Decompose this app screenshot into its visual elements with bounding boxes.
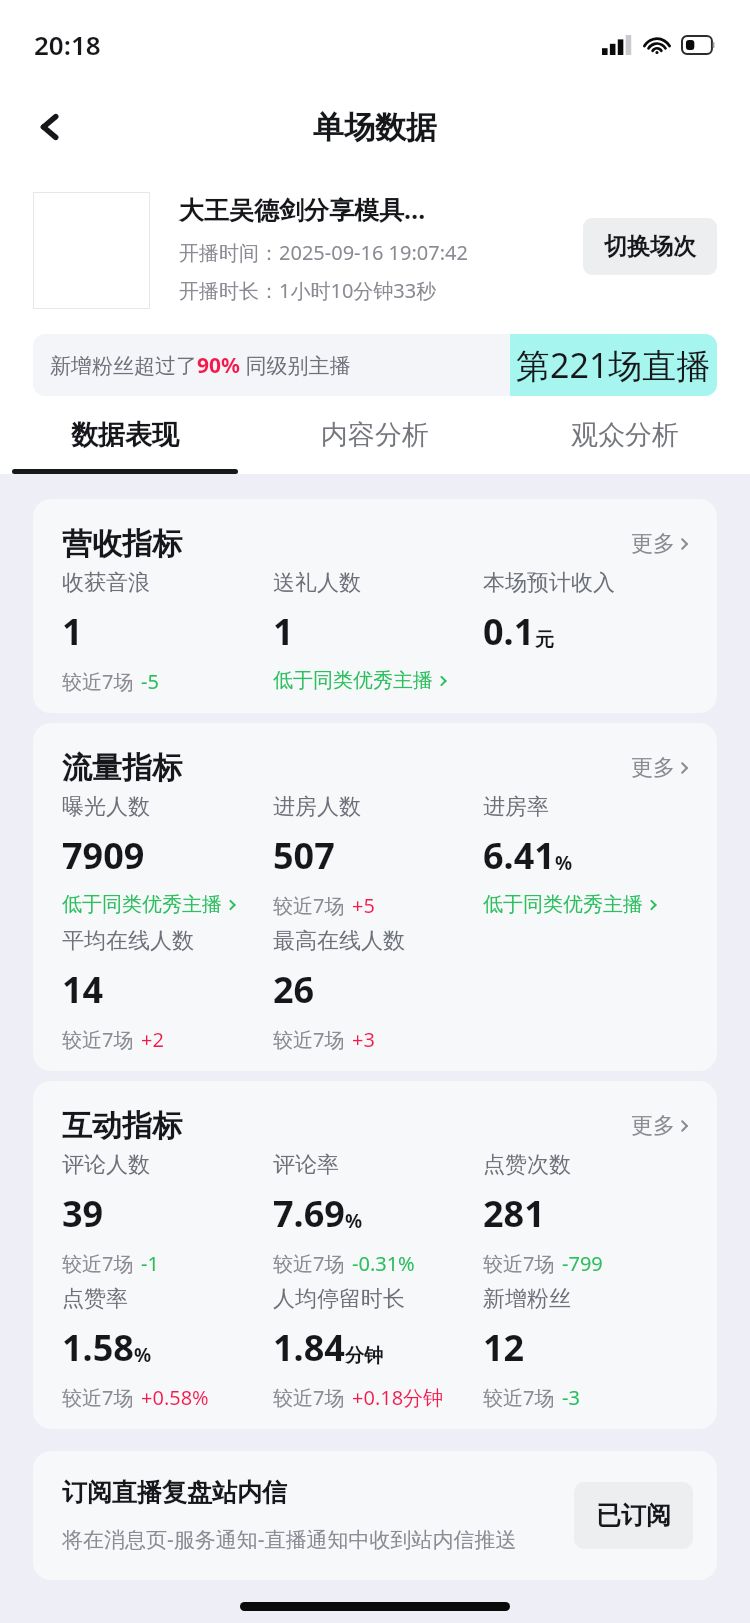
staticText: 7.69 bbox=[273, 1189, 345, 1238]
staticText: -0.31% bbox=[352, 1250, 415, 1277]
staticText: 26 bbox=[273, 965, 315, 1014]
staticText: 低于同类优秀主播 bbox=[483, 892, 643, 917]
staticText: 较近7场 bbox=[62, 668, 134, 695]
staticText: 1.84 bbox=[273, 1323, 345, 1372]
button[interactable]: 低于同类优秀主播 bbox=[273, 668, 451, 693]
button[interactable]: 更多 bbox=[631, 754, 693, 782]
button[interactable]: Back bbox=[22, 99, 78, 155]
staticText: 更多 bbox=[631, 1112, 675, 1140]
staticText: 人均停留时长 bbox=[273, 1285, 405, 1313]
button[interactable]: 已订阅 bbox=[574, 1482, 693, 1549]
staticText: +3 bbox=[352, 1026, 375, 1053]
staticText: 订阅直播复盘站内信 bbox=[62, 1477, 287, 1508]
staticText: 营收指标 bbox=[62, 525, 182, 563]
staticText: 14 bbox=[62, 965, 104, 1014]
staticText: 低于同类优秀主播 bbox=[273, 668, 433, 693]
staticText: 较近7场 bbox=[62, 1026, 134, 1053]
staticText: 观众分析 bbox=[571, 418, 679, 452]
staticText: 低于同类优秀主播 bbox=[62, 892, 222, 917]
staticText: 较近7场 bbox=[483, 1250, 555, 1277]
staticText: 互动指标 bbox=[62, 1107, 182, 1145]
staticText: +2 bbox=[141, 1026, 164, 1053]
staticText: 开播时长：1小时10分钟33秒 bbox=[179, 277, 437, 304]
staticText: 较近7场 bbox=[62, 1384, 134, 1411]
staticText: 39 bbox=[62, 1189, 104, 1238]
staticText: % bbox=[555, 850, 573, 876]
staticText: 7909 bbox=[62, 831, 145, 880]
button[interactable]: 更多 bbox=[631, 1112, 693, 1140]
staticText: 数据表现 bbox=[71, 418, 179, 452]
staticText: 收获音浪 bbox=[62, 569, 150, 597]
staticText: 12 bbox=[483, 1323, 525, 1372]
staticText: 切换场次 bbox=[604, 232, 696, 261]
button[interactable]: 订阅直播复盘站内信 bbox=[33, 1451, 717, 1580]
staticText: 进房人数 bbox=[273, 793, 361, 821]
button[interactable]: 新增粉丝超过了 bbox=[33, 334, 717, 396]
button[interactable]: 切换场次 bbox=[583, 218, 717, 275]
staticText: 进房率 bbox=[483, 793, 549, 821]
staticText: 本场预计收入 bbox=[483, 569, 615, 597]
staticText: +5 bbox=[352, 892, 375, 919]
staticText: 20:18 bbox=[34, 27, 101, 62]
staticText: % bbox=[345, 1208, 363, 1234]
staticText: 更多 bbox=[631, 754, 675, 782]
staticText: 较近7场 bbox=[483, 1384, 555, 1411]
staticText: 1.58 bbox=[62, 1323, 134, 1372]
staticText: 较近7场 bbox=[62, 1250, 134, 1277]
staticText: 507 bbox=[273, 831, 335, 880]
staticText: 内容分析 bbox=[321, 418, 429, 452]
staticText: 90% bbox=[197, 351, 240, 380]
staticText: 评论人数 bbox=[62, 1151, 150, 1179]
staticText: 评论率 bbox=[273, 1151, 339, 1179]
staticText: 281 bbox=[483, 1189, 545, 1238]
staticText: 新增粉丝 bbox=[483, 1285, 571, 1313]
staticText: 点赞次数 bbox=[483, 1151, 571, 1179]
staticText: 1 bbox=[273, 607, 294, 656]
staticText: 更多 bbox=[631, 530, 675, 558]
staticText: -5 bbox=[141, 668, 159, 695]
staticText: 1 bbox=[62, 607, 83, 656]
staticText: 分钟 bbox=[345, 1344, 383, 1368]
staticText: 点赞率 bbox=[62, 1285, 128, 1313]
staticText: 较近7场 bbox=[273, 1384, 345, 1411]
staticText: 较近7场 bbox=[273, 1250, 345, 1277]
staticText: 同级别主播 bbox=[240, 351, 351, 380]
button[interactable]: 低于同类优秀主播 bbox=[483, 892, 661, 917]
staticText: 最高在线人数 bbox=[273, 927, 405, 955]
staticText: +0.58% bbox=[141, 1384, 209, 1411]
staticText: 单场数据 bbox=[313, 108, 437, 147]
staticText: +0.18分钟 bbox=[352, 1384, 444, 1411]
staticText: 大王吴德剑分享模具… bbox=[179, 192, 426, 226]
staticText: 0.1 bbox=[483, 607, 535, 656]
staticText: -1 bbox=[141, 1250, 159, 1277]
button[interactable]: 观众分析 bbox=[500, 418, 750, 474]
staticText: 第221场直播 bbox=[516, 342, 711, 388]
staticText: 较近7场 bbox=[273, 1026, 345, 1053]
staticText: 6.41 bbox=[483, 831, 555, 880]
button[interactable]: 更多 bbox=[631, 530, 693, 558]
staticText: 曝光人数 bbox=[62, 793, 150, 821]
staticText: 元 bbox=[535, 628, 554, 652]
staticText: -3 bbox=[562, 1384, 580, 1411]
button[interactable]: 内容分析 bbox=[250, 418, 500, 474]
staticText: 新增粉丝超过了 bbox=[50, 353, 197, 379]
staticText: 开播时间：2025-09-16 19:07:42 bbox=[179, 239, 468, 266]
staticText: 送礼人数 bbox=[273, 569, 361, 597]
staticText: 较近7场 bbox=[273, 892, 345, 919]
staticText: 将在消息页-服务通知-直播通知中收到站内信推送 bbox=[62, 1525, 517, 1554]
staticText: 平均在线人数 bbox=[62, 927, 194, 955]
button[interactable]: 低于同类优秀主播 bbox=[62, 892, 240, 917]
staticText: % bbox=[134, 1342, 152, 1368]
staticText: 已订阅 bbox=[596, 1500, 671, 1531]
staticText: -799 bbox=[562, 1250, 603, 1277]
staticText: 流量指标 bbox=[62, 749, 182, 787]
button[interactable]: 数据表现 bbox=[0, 418, 250, 474]
